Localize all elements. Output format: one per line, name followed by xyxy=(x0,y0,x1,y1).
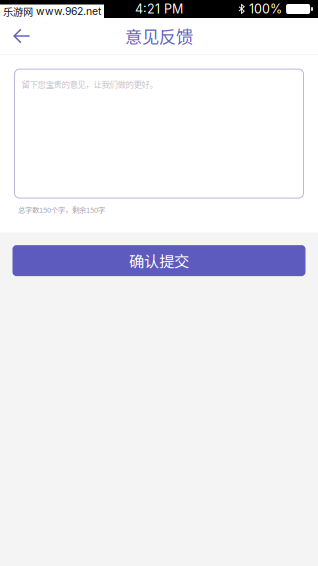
staticText: 意见反馈 xyxy=(125,23,193,49)
staticText: 乐游网 xyxy=(3,4,33,19)
button[interactable]: Back xyxy=(0,18,55,54)
staticText: www.962.net xyxy=(36,5,101,18)
button[interactable]: 留下您宝贵的意见，让我们做的更好。 xyxy=(14,69,303,198)
staticText: 总字数150个字，剩余150字 xyxy=(18,204,105,215)
button[interactable]: 确认提交 xyxy=(12,245,305,276)
staticText: 留下您宝贵的意见，让我们做的更好。 xyxy=(21,78,157,90)
staticText: 确认提交 xyxy=(129,249,189,272)
staticText: 100% xyxy=(249,1,282,17)
staticText: 4:21 PM xyxy=(135,1,183,17)
